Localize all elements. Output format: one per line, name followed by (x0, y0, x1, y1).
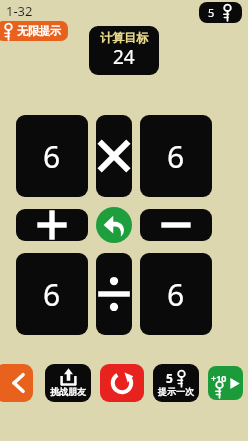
staticText: 24 (113, 44, 135, 70)
staticText: 6 (167, 136, 185, 177)
button[interactable]: Hints remaining (199, 2, 242, 23)
button[interactable]: 6 (140, 115, 212, 197)
button[interactable]: Plus (16, 209, 88, 241)
staticText: 无限提示 (17, 24, 61, 38)
staticText: 计算目标 (100, 30, 148, 45)
staticText: 1-32 (6, 2, 33, 20)
staticText: +10 (211, 372, 227, 384)
button[interactable]: Divide (96, 253, 132, 335)
staticText: 5 (208, 5, 215, 20)
button[interactable]: 5 (153, 364, 199, 402)
button[interactable]: Multiply (96, 115, 132, 197)
button[interactable]: 6 (16, 115, 88, 197)
button[interactable]: Refresh (100, 364, 144, 402)
button[interactable]: Undo (96, 207, 132, 243)
button[interactable]: 无限提示 (0, 21, 68, 41)
button[interactable]: 6 (140, 253, 212, 335)
button[interactable]: Minus (140, 209, 212, 241)
button[interactable]: Back (0, 364, 33, 402)
button[interactable]: 6 (16, 253, 88, 335)
staticText: 6 (167, 274, 185, 315)
staticText: 5 (166, 370, 173, 386)
staticText: 提示一次 (158, 386, 194, 397)
button[interactable]: Watch ad for 10 hints (208, 366, 243, 400)
staticText: 挑战朋友 (50, 386, 86, 397)
button[interactable]: 挑战朋友 (45, 364, 91, 402)
staticText: 6 (43, 274, 61, 315)
staticText: 6 (43, 136, 61, 177)
